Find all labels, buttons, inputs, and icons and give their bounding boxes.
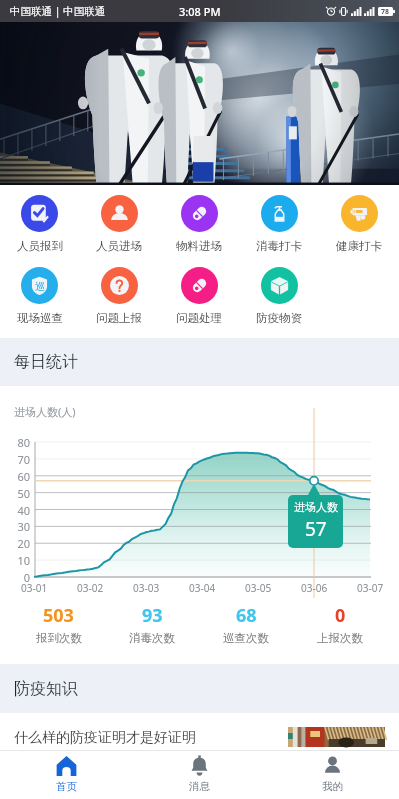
staticText: 进场人数 [294, 500, 338, 514]
staticText: 防疫物资 [256, 311, 302, 325]
staticText: 什么样的防疫证明才是好证明 [14, 729, 196, 747]
button[interactable]: 0 [293, 603, 387, 645]
staticText: 10 [17, 553, 30, 568]
staticText: 78 [381, 7, 390, 16]
staticText: 防疫知识 [14, 679, 78, 699]
staticText: 0 [23, 570, 30, 585]
staticText: 报到次数 [36, 631, 82, 645]
staticText: 40 [17, 503, 30, 518]
staticText: 30 [17, 519, 30, 534]
staticText: 60 [17, 469, 30, 484]
button[interactable]: 503 [12, 603, 105, 645]
staticText: 93 [142, 603, 163, 628]
button[interactable]: 首页 [0, 751, 133, 799]
staticText: 上报次数 [317, 631, 363, 645]
staticText: 68 [236, 603, 257, 628]
staticText: 03-04 [189, 581, 216, 595]
staticText: 问题处理 [176, 311, 222, 325]
button[interactable]: 人员进场 [79, 195, 159, 253]
button[interactable]: 68 [199, 603, 293, 645]
staticText: 0 [335, 603, 346, 628]
button[interactable]: 防疫物资 [239, 267, 319, 325]
staticText: 每日统计 [14, 352, 78, 372]
button[interactable]: 什么样的防疫证明才是好证明 [0, 713, 399, 750]
staticText: 巡查次数 [223, 631, 269, 645]
button[interactable]: 93 [105, 603, 199, 645]
button[interactable]: 问题上报 [79, 267, 159, 325]
staticText: 进场人数(人) [14, 404, 76, 419]
button[interactable]: 问题处理 [159, 267, 239, 325]
staticText: 消毒打卡 [256, 239, 302, 253]
staticText: 50 [17, 486, 30, 501]
staticText: 503 [43, 603, 74, 628]
staticText: 现场巡查 [17, 311, 63, 325]
staticText: 人员报到 [17, 239, 63, 253]
staticText: 消毒次数 [129, 631, 175, 645]
staticText: 57 [305, 516, 327, 542]
staticText: 中国联通 | 中国联通 [10, 4, 106, 18]
staticText: 20 [17, 536, 30, 551]
staticText: 消息 [189, 780, 210, 793]
staticText: 03-07 [357, 581, 384, 595]
button[interactable]: 物料进场 [159, 195, 239, 253]
staticText: 我的 [322, 780, 343, 793]
staticText: 03-02 [77, 581, 104, 595]
staticText: 物料进场 [176, 239, 222, 253]
button[interactable]: 巡 [0, 267, 79, 325]
staticText: 巡 [35, 280, 45, 293]
staticText: 03-05 [245, 581, 272, 595]
staticText: 80 [17, 435, 30, 450]
button[interactable]: 人员报到 [0, 195, 79, 253]
staticText: 03-03 [133, 581, 160, 595]
button[interactable]: 我的 [266, 751, 399, 799]
staticText: 人员进场 [96, 239, 142, 253]
staticText: 问题上报 [96, 311, 142, 325]
staticText: 3:08 PM [179, 4, 221, 19]
staticText: 首页 [56, 780, 77, 793]
button[interactable]: 健康打卡 [319, 195, 399, 253]
button[interactable]: 消毒打卡 [239, 195, 319, 253]
staticText: 健康打卡 [336, 239, 382, 253]
staticText: 03-06 [301, 581, 328, 595]
button[interactable]: 消息 [133, 751, 266, 799]
staticText: 03-01 [21, 581, 48, 595]
staticText: 70 [17, 452, 30, 467]
